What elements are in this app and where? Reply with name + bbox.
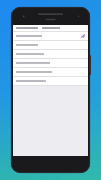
button[interactable] (13, 68, 88, 76)
button[interactable]: Edit (13, 32, 88, 40)
button[interactable] (13, 50, 88, 58)
other: Edit (81, 34, 85, 38)
button[interactable] (13, 59, 88, 67)
button[interactable] (13, 77, 88, 85)
button[interactable] (13, 25, 88, 31)
button[interactable] (13, 41, 88, 49)
